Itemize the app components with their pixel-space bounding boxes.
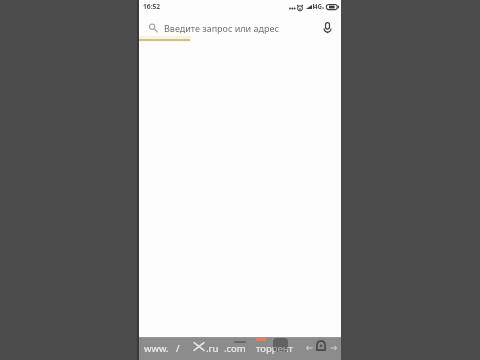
button[interactable]: Keyboard: [316, 340, 326, 351]
staticText: торрент: [256, 342, 294, 355]
button[interactable]: Previous suggestion: [306, 345, 313, 351]
staticText: Введите запрос или адрес: [164, 22, 279, 34]
staticText: 4G: [314, 2, 323, 10]
staticText: /: [176, 342, 180, 355]
button[interactable]: Clear: [193, 342, 205, 351]
staticText: 16:52: [143, 2, 161, 11]
button[interactable]: .com: [224, 337, 246, 360]
button[interactable]: Search: [139, 15, 341, 39]
other: Voice search: [320, 19, 334, 34]
button[interactable]: /: [176, 337, 180, 360]
other: Search: [147, 21, 158, 32]
staticText: www.: [144, 342, 169, 355]
staticText: .com: [224, 342, 246, 355]
button[interactable]: .ru: [206, 337, 219, 360]
button[interactable]: торрент: [256, 342, 294, 355]
button[interactable]: Next suggestion: [330, 345, 337, 351]
staticText: .ru: [206, 342, 219, 355]
button[interactable]: www.: [144, 337, 169, 360]
